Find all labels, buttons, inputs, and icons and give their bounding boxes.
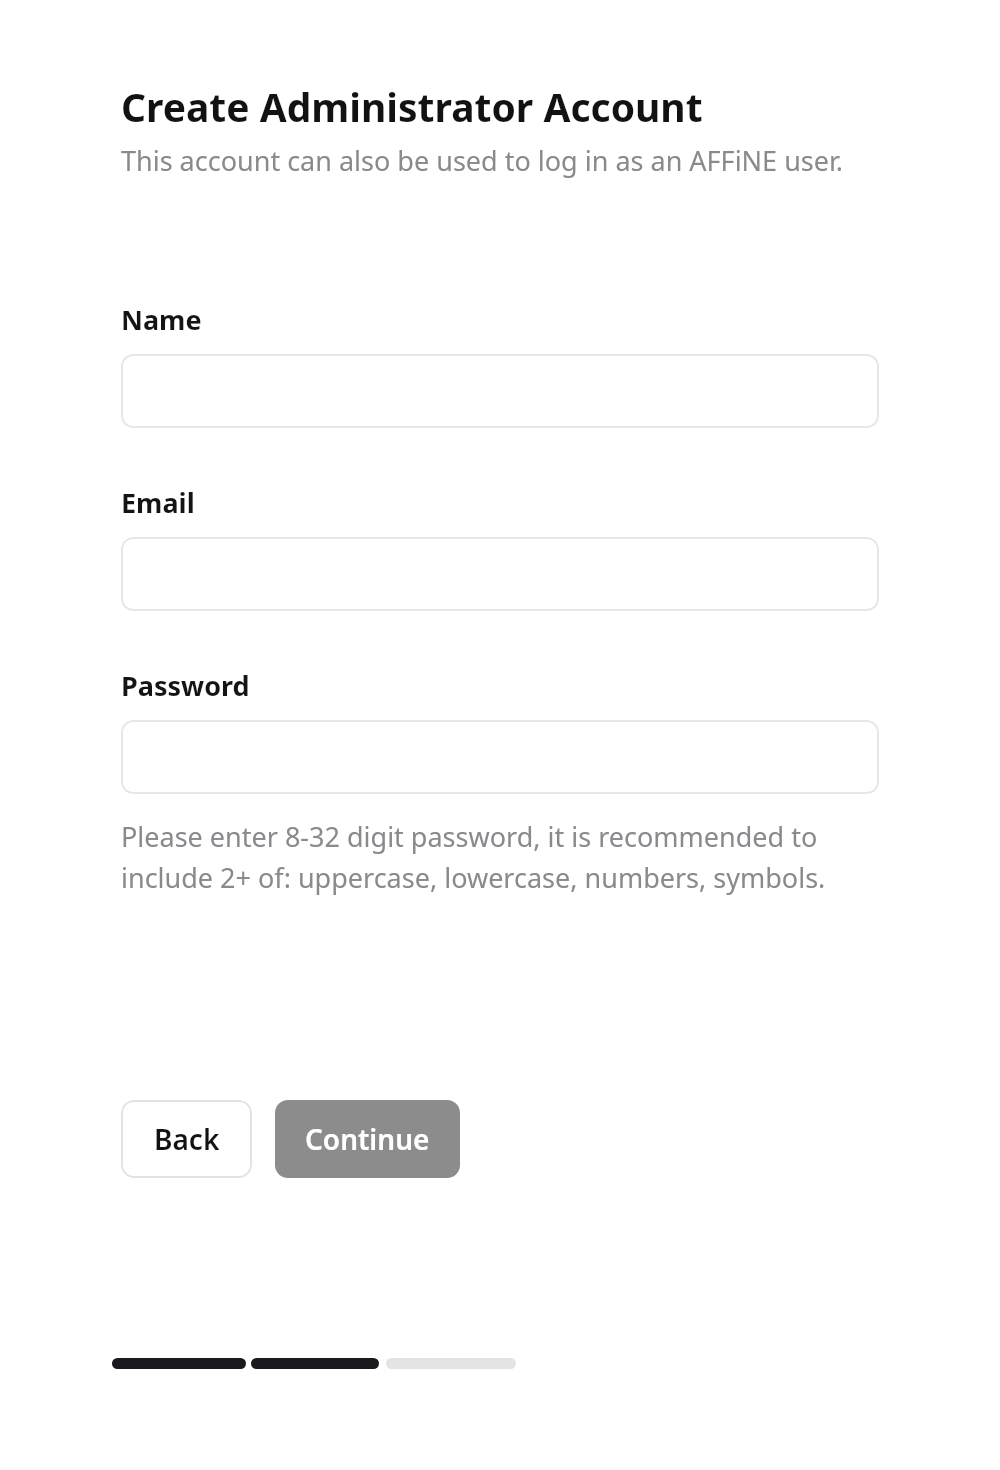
button[interactable]: Step complete — [251, 1358, 379, 1369]
button[interactable]: Continue — [275, 1100, 460, 1178]
staticText: Create Administrator Account — [121, 80, 703, 133]
staticText: Name — [121, 301, 202, 338]
staticText: Please enter 8-32 digit password, it is … — [121, 818, 861, 896]
button[interactable] — [121, 537, 879, 611]
button[interactable] — [121, 720, 879, 794]
staticText: Back — [154, 1120, 220, 1158]
staticText: This account can also be used to log in … — [121, 142, 844, 179]
button[interactable]: Step pending — [386, 1358, 516, 1369]
staticText: Continue — [305, 1120, 430, 1158]
button[interactable]: Back — [121, 1100, 252, 1178]
button[interactable] — [121, 354, 879, 428]
staticText: Password — [121, 667, 250, 704]
button[interactable]: Step complete — [112, 1358, 246, 1369]
staticText: Email — [121, 484, 195, 521]
